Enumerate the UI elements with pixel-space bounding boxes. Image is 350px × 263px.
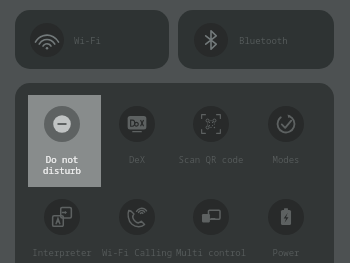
button[interactable] (252, 188, 325, 263)
button[interactable] (177, 188, 250, 263)
staticText: Do not disturb (17, 153, 107, 177)
staticText: DeX (92, 153, 182, 165)
staticText: Wi-Fi Calling (92, 246, 182, 258)
button[interactable] (103, 188, 176, 263)
button[interactable]: Wi-Fi (15, 10, 169, 69)
button[interactable] (28, 95, 101, 187)
staticText: Wi-Fi (74, 34, 102, 46)
staticText: Modes (241, 153, 331, 165)
staticText: Multi control (166, 246, 256, 258)
button[interactable] (252, 95, 325, 187)
staticText: Scan QR code (166, 153, 256, 165)
button[interactable] (103, 95, 176, 187)
staticText: Interpreter (17, 246, 107, 258)
staticText: Bluetooth (239, 34, 288, 46)
staticText: Power (241, 246, 331, 258)
button[interactable] (28, 188, 101, 263)
button[interactable]: Bluetooth (178, 10, 334, 69)
button[interactable] (177, 95, 250, 187)
